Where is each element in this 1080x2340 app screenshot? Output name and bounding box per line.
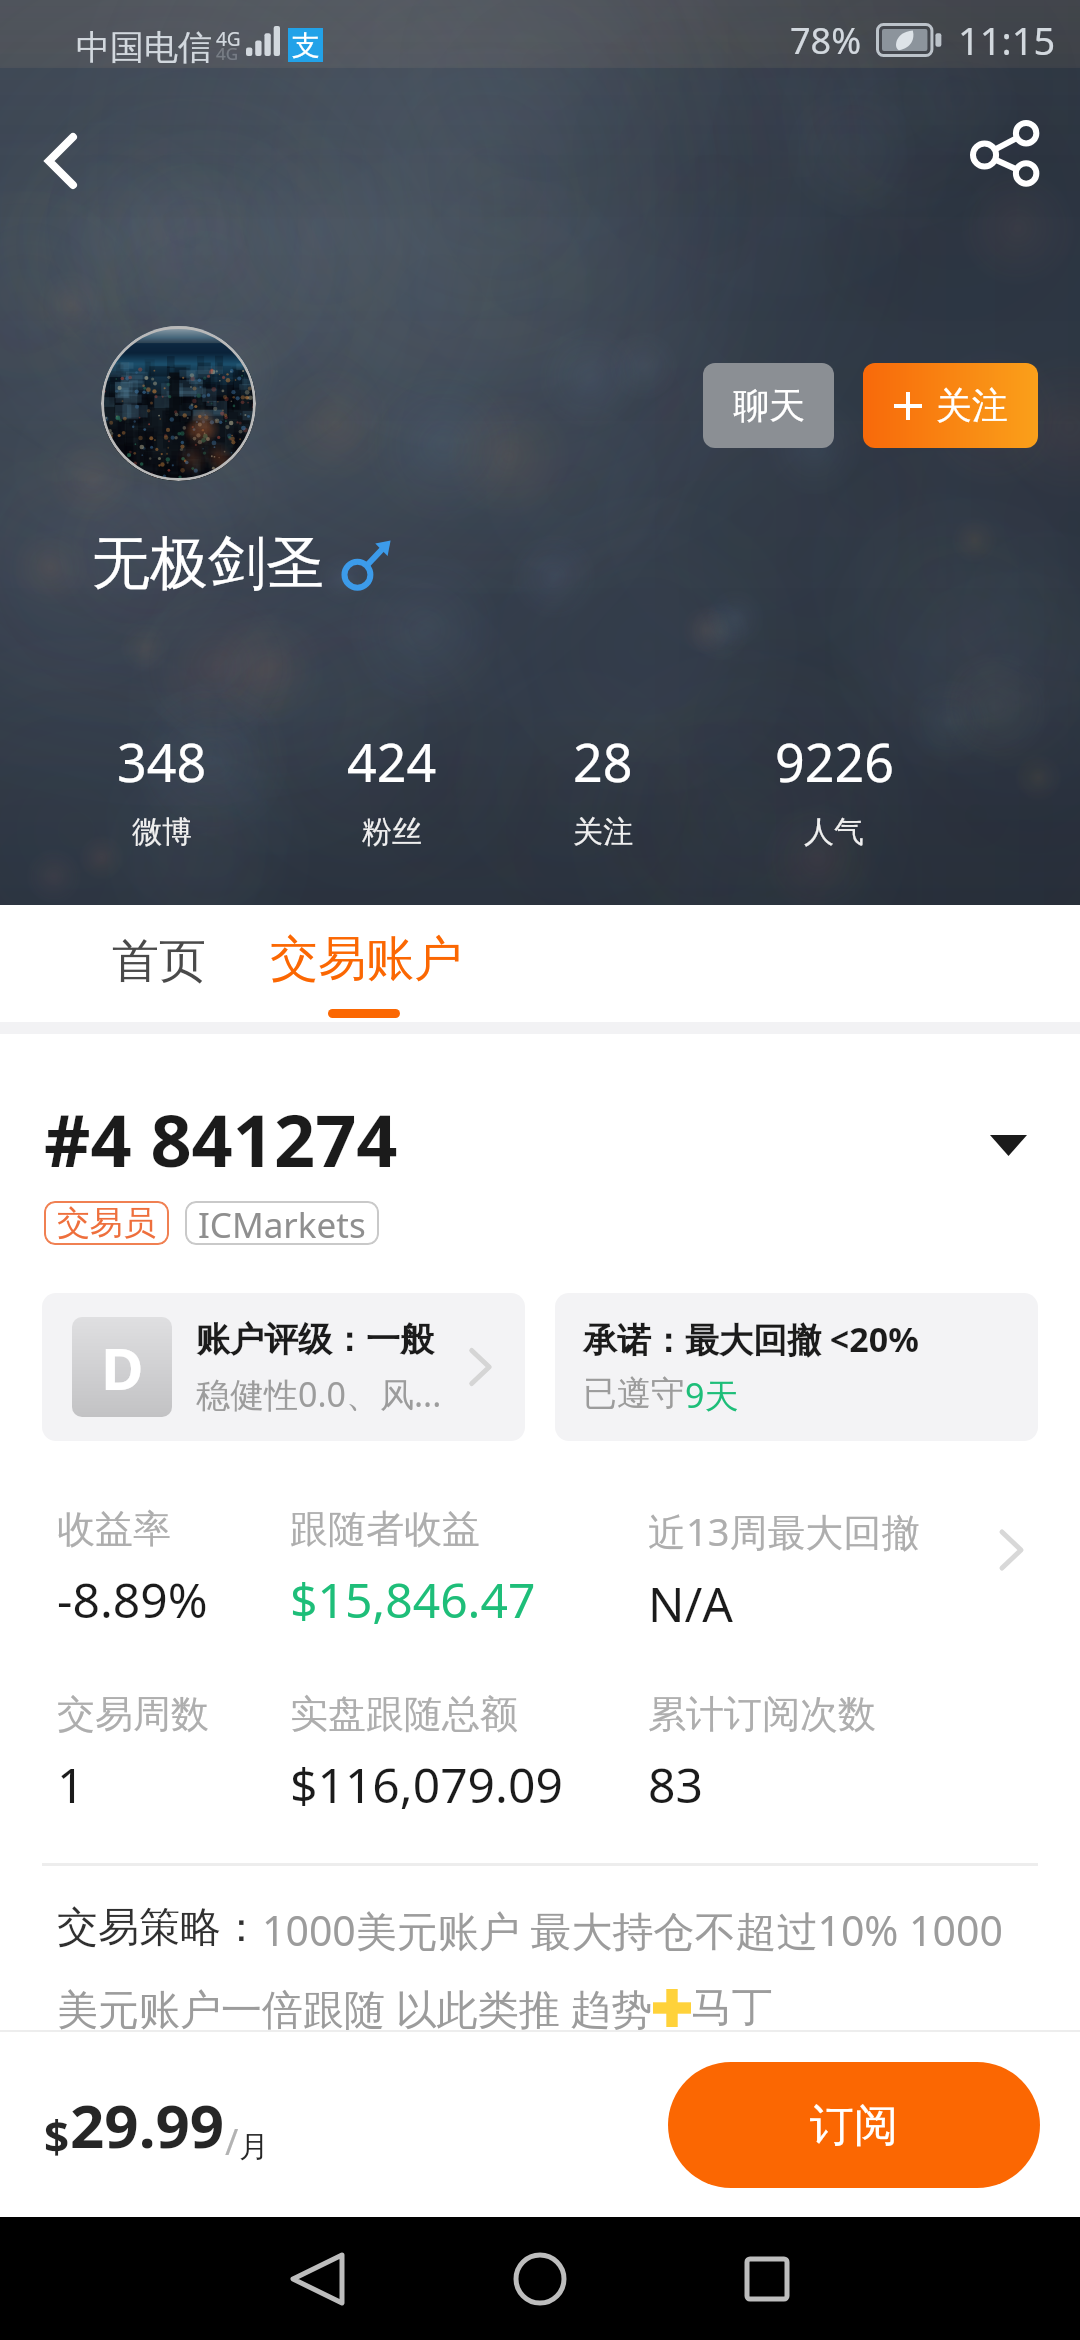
button[interactable]: Back: [11, 111, 111, 211]
staticText: 9226: [775, 726, 894, 797]
staticText: 1000美元账户 最大持仓不超过10% 1000: [262, 1902, 1003, 1958]
button[interactable]: 关注: [863, 363, 1038, 448]
staticText: 348: [117, 726, 207, 797]
staticText: 月: [239, 2128, 269, 2166]
button[interactable]: 首页: [72, 905, 246, 1022]
staticText: 4G: [216, 42, 239, 65]
staticText: 交易周数: [57, 1690, 209, 1738]
staticText: 78%: [790, 16, 862, 65]
staticText: 已遵守: [583, 1372, 685, 1415]
button[interactable]: 聊天: [703, 363, 834, 448]
button[interactable]: Back: [262, 2217, 372, 2340]
staticText: #4 841274: [44, 1090, 398, 1188]
staticText: 跟随者收益: [290, 1505, 480, 1553]
button[interactable]: 收益率: [0, 1505, 1080, 1817]
staticText: 交易员: [57, 1202, 156, 1244]
staticText: 首页: [112, 932, 206, 991]
staticText: D: [101, 1328, 144, 1407]
staticText: 马丁: [691, 1982, 773, 2034]
staticText: 美元账户一倍跟随 以此类推 趋势: [57, 1980, 653, 2036]
staticText: 订阅: [810, 2098, 898, 2153]
staticText: 11:15: [958, 14, 1056, 66]
button[interactable]: 9226: [714, 726, 954, 851]
staticText: 无极剑圣: [92, 527, 324, 600]
staticText: 4G: [216, 26, 241, 52]
staticText: 424: [347, 726, 437, 797]
button[interactable]: 交易账户: [266, 905, 466, 1022]
staticText: 关注: [936, 383, 1008, 428]
staticText: 近13周最大回撤: [648, 1505, 920, 1557]
staticText: 微博: [132, 813, 192, 851]
staticText: 累计订阅次数: [648, 1690, 876, 1738]
button[interactable]: Recent apps: [712, 2217, 822, 2340]
staticText: 交易账户: [270, 929, 462, 989]
staticText: 交易策略：: [57, 1902, 262, 1954]
button[interactable]: 承诺：最大回撤 <20%: [555, 1293, 1038, 1441]
staticText: 人气: [804, 813, 864, 851]
button[interactable]: 28: [483, 726, 723, 851]
staticText: 83: [648, 1752, 703, 1817]
button[interactable]: ICMarkets: [185, 1201, 379, 1245]
staticText: 承诺：最大回撤 <20%: [583, 1316, 919, 1362]
staticText: 支: [292, 28, 320, 62]
staticText: $15,846.47: [290, 1567, 536, 1632]
staticText: $: [44, 2106, 70, 2166]
staticText: /: [225, 2117, 239, 2166]
staticText: 29.99: [70, 2084, 225, 2166]
staticText: 28: [573, 726, 633, 797]
button[interactable]: Select account: [972, 1103, 1044, 1175]
staticText: 聊天: [733, 383, 805, 428]
staticText: 关注: [573, 813, 633, 851]
staticText: 实盘跟随总额: [290, 1690, 518, 1738]
button[interactable]: D: [42, 1293, 525, 1441]
staticText: 1: [57, 1752, 85, 1817]
staticText: 9天: [685, 1372, 739, 1418]
staticText: 账户评级：一般: [196, 1318, 434, 1361]
staticText: 收益率: [57, 1505, 171, 1553]
staticText: -8.89%: [57, 1567, 208, 1632]
button[interactable]: 订阅: [668, 2062, 1040, 2188]
button[interactable]: 424: [272, 726, 512, 851]
button[interactable]: Share: [955, 105, 1055, 205]
staticText: $116,079.09: [290, 1752, 563, 1817]
button[interactable]: Profile photo: [101, 326, 256, 481]
staticText: 稳健性0.0、风...: [196, 1371, 442, 1417]
button[interactable]: Home: [485, 2217, 595, 2340]
staticText: 粉丝: [362, 813, 422, 851]
button[interactable]: 348: [42, 726, 282, 851]
staticText: N/A: [648, 1571, 734, 1636]
button[interactable]: 交易员: [44, 1201, 169, 1245]
staticText: ICMarkets: [198, 1201, 366, 1245]
staticText: 中国电信: [76, 26, 212, 69]
